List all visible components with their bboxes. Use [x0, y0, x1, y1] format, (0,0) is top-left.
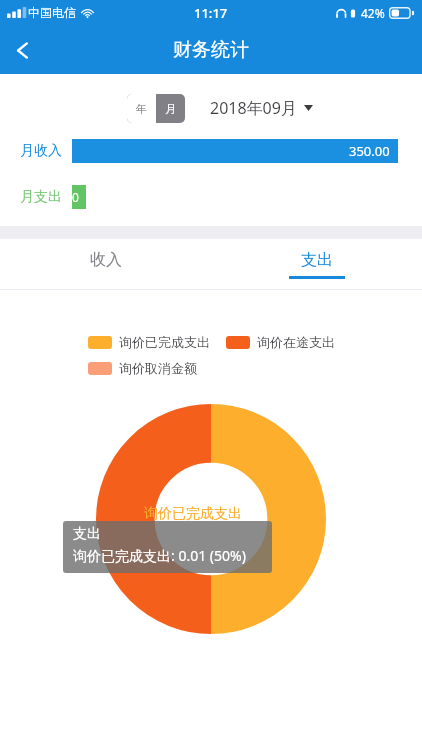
staticText: 月收入	[20, 142, 62, 160]
staticText: 2018年09月	[210, 97, 297, 119]
button[interactable]: 收入	[0, 239, 211, 289]
staticText: 支出	[301, 250, 333, 270]
staticText: 11:17	[194, 4, 228, 22]
button[interactable]: 2018年09月	[208, 92, 315, 124]
button[interactable]: 月	[156, 94, 185, 123]
staticText: 0	[72, 189, 79, 205]
button[interactable]: 年	[127, 94, 156, 123]
staticText: 询价已完成支出	[119, 334, 210, 350]
staticText: 询价在途支出	[257, 334, 335, 350]
staticText: 询价取消金额	[119, 360, 197, 376]
button[interactable]: 支出	[211, 239, 422, 289]
staticText: 支出	[73, 525, 101, 543]
staticText: 询价已完成支出	[144, 505, 242, 523]
staticText: 财务统计	[173, 38, 249, 62]
staticText: 收入	[90, 250, 122, 270]
staticText: 42%	[361, 5, 385, 21]
staticText: 询价已完成支出: 0.01 (50%)	[73, 546, 246, 565]
staticText: 年	[136, 102, 147, 116]
staticText: 月	[165, 102, 176, 116]
staticText: 中国电信	[28, 5, 76, 20]
button[interactable]: Back	[0, 26, 48, 74]
staticText: 月支出	[20, 188, 62, 206]
staticText: 350.00	[349, 142, 390, 160]
